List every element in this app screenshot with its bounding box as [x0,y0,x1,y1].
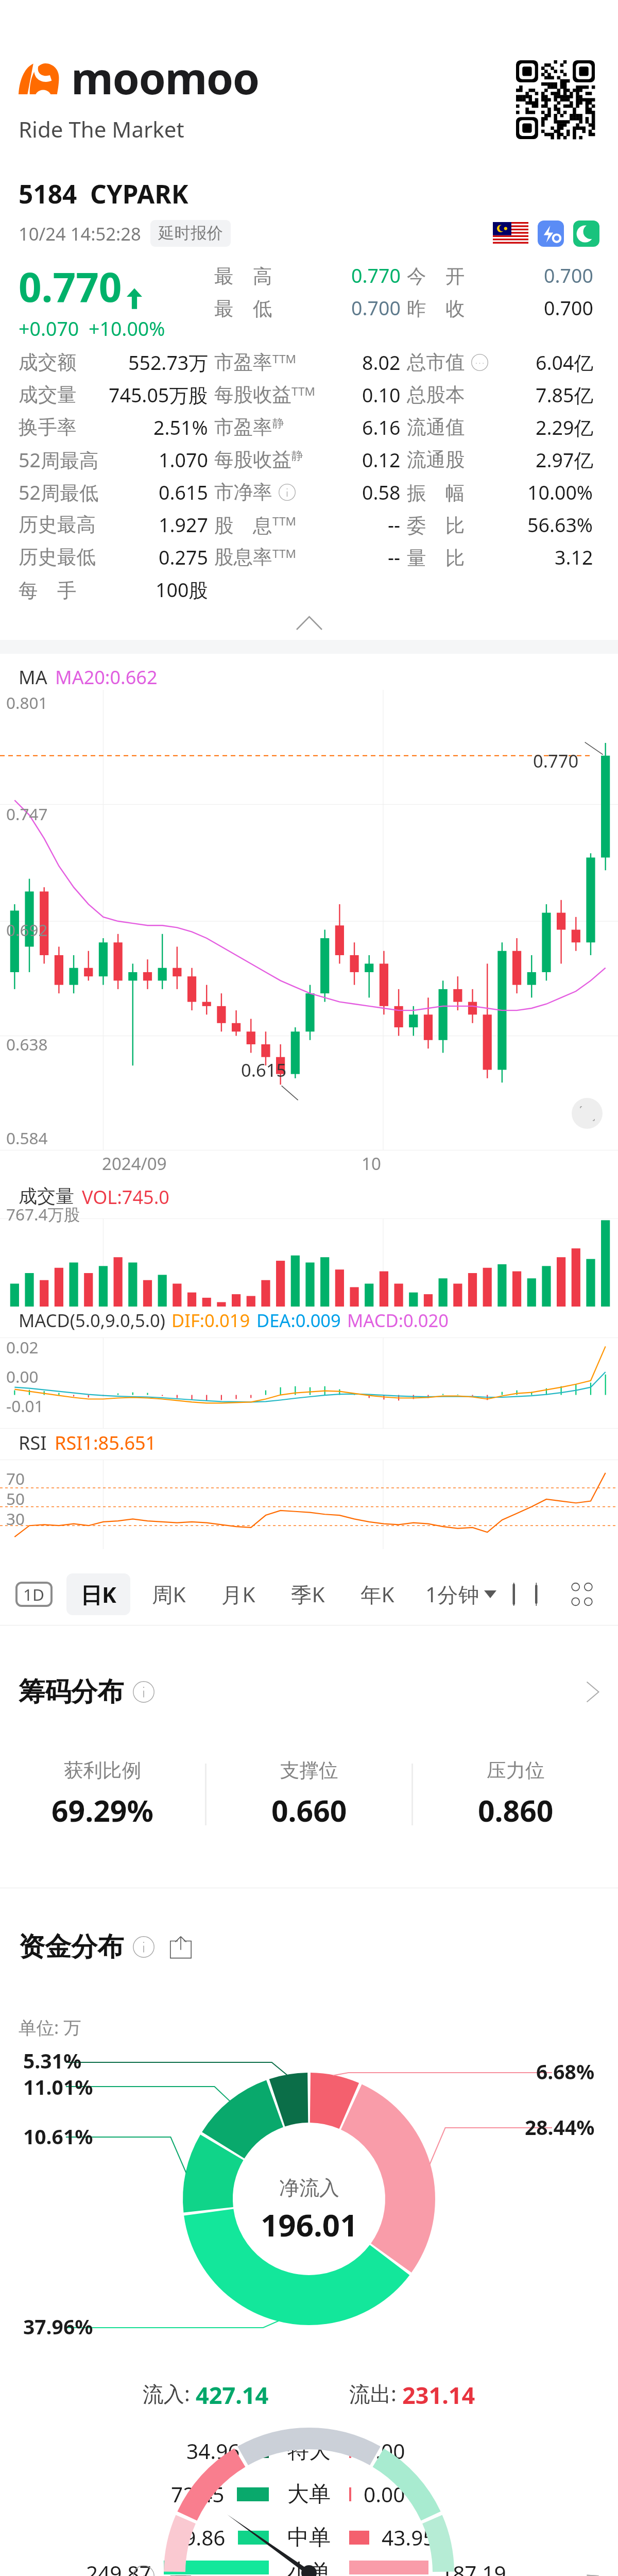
staticText: 流出: [349,2379,402,2408]
staticText: 0.770 [533,749,579,773]
staticText: 市盈率 [214,415,272,439]
staticText: 0.638 [6,1033,48,1055]
staticText: 0.700 [351,295,401,321]
staticText: 季K [291,1580,325,1608]
staticText: 年K [360,1580,394,1608]
staticText: -- [388,512,401,538]
staticText: 0.747 [6,803,48,825]
staticText: 10.61% [23,2123,93,2150]
staticText: 振 幅 [407,479,465,505]
button[interactable]: More tools [564,1575,599,1614]
staticText: 6.16 [362,414,401,440]
button[interactable]: Night mode [573,221,599,247]
staticText: MA [19,665,47,690]
button[interactable]: Fullscreen chart [572,1098,603,1129]
button[interactable]: Level 2 [538,221,564,247]
staticText: 每股收益 [214,383,291,407]
staticText: 股息率 [214,545,272,569]
staticText: 249.87 [86,2559,151,2576]
staticText: 30 [6,1507,25,1530]
staticText: 0.10 [362,382,401,408]
staticText: 0.770 [351,262,401,289]
button[interactable]: 月K [208,1574,269,1615]
staticText: 2.97亿 [536,447,593,473]
staticText: 11.01% [23,2073,93,2100]
staticText: MACD:0.020 [347,1308,449,1332]
staticText: TTM [291,383,315,399]
staticText: 69.29% [51,1790,153,1831]
staticText: 1.070 [159,447,208,473]
button[interactable]: Collapse [19,606,599,640]
staticText: 767.4万股 [6,1203,80,1225]
staticText: 中单 [287,2524,331,2551]
staticText: 552.73万 [128,349,208,376]
button[interactable]: 1分钟 [416,1574,506,1615]
staticText: 委 比 [407,512,465,538]
staticText: 0.58 [362,479,401,505]
staticText: 特大 [287,2437,331,2465]
staticText: 69.86 [172,2523,226,2552]
staticText: 50 [6,1487,25,1510]
button[interactable]: 年K [347,1574,408,1615]
button[interactable]: Indicators [506,1577,544,1612]
staticText: 成交额 [19,350,77,375]
staticText: 745.05万股 [109,382,208,408]
staticText: 10 [362,1152,381,1175]
staticText: 日K [80,1580,116,1609]
staticText: 单位: 万 [19,2015,81,2039]
staticText: 6.04亿 [536,349,593,376]
staticText: 流通值 [407,415,465,439]
staticText: 总市值 [407,350,465,375]
staticText: 0.12 [362,447,401,473]
staticText: 成交量 [19,1184,74,1208]
staticText: 流通股 [407,448,465,472]
other: Share [168,1935,193,1959]
staticText: 100股 [156,577,208,603]
staticText: 0.00 [364,2437,405,2465]
staticText: VOL:745.0 [82,1184,169,1210]
staticText: 今 开 [407,262,465,289]
staticText: 0.700 [544,262,593,289]
staticText: 70 [6,1467,25,1489]
staticText: 0.615 [159,479,208,505]
staticText: 小单 [287,2559,331,2576]
button[interactable]: 延时报价 [150,220,231,247]
staticText: 1分钟 [425,1580,479,1608]
button[interactable]: 筹码分布 [19,1625,599,1758]
staticText: 2024/09 [102,1152,167,1175]
staticText: 1D [23,1583,45,1605]
button[interactable]: 日K [66,1573,130,1615]
staticText: 周K [152,1580,186,1608]
staticText: 历史最低 [19,545,96,569]
staticText: 市盈率 [214,350,272,375]
staticText: 2.29亿 [536,414,593,440]
button[interactable]: 周K [138,1574,200,1615]
staticText: 0.02 [6,1336,39,1358]
staticText: 6.68% [536,2058,595,2085]
staticText: 静 [291,448,303,463]
staticText: 52周最低 [19,479,99,505]
staticText: 0.860 [478,1790,554,1831]
staticText: 196.01 [261,2204,358,2246]
staticText: 1.927 [159,512,208,538]
staticText: -0.01 [6,1395,44,1417]
staticText: MACD(5.0,9.0,5.0) [19,1308,165,1332]
button[interactable]: 季K [277,1574,339,1615]
staticText: 股 息 [214,512,272,538]
staticText: 10/24 14:52:28 [19,222,141,246]
staticText: 0.801 [6,691,48,714]
staticText: 7.85亿 [536,382,593,408]
staticText: DEA:0.009 [256,1308,341,1332]
staticText: 187.19 [441,2559,506,2576]
staticText: 3.12 [555,544,593,570]
staticText: 大单 [287,2481,331,2508]
staticText: 28.44% [525,2113,595,2141]
staticText: 72.45 [171,2480,225,2509]
staticText: 0.00 [6,1365,39,1387]
button[interactable]: 1D [15,1582,53,1607]
staticText: MA20:0.662 [55,665,158,690]
staticText: 昨 收 [407,295,465,321]
staticText: RSI [19,1430,47,1455]
staticText: TTM [272,351,296,367]
staticText: 最 高 [214,262,272,289]
